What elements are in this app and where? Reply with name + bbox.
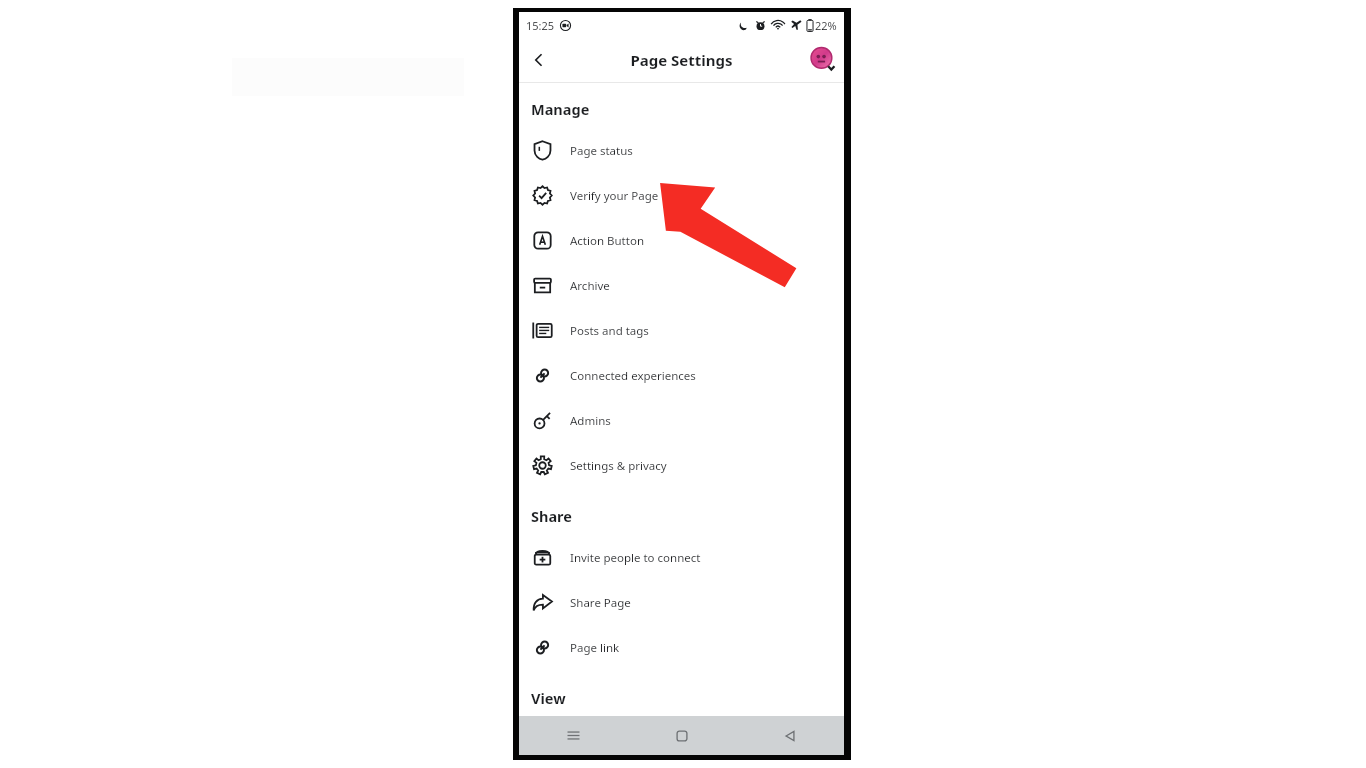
staticText: Page status — [570, 143, 633, 159]
button[interactable]: Admins — [519, 398, 844, 443]
staticText: 22% — [815, 18, 837, 33]
button[interactable]: Page status — [519, 128, 844, 173]
button[interactable]: Back — [736, 716, 844, 755]
staticText: Page link — [570, 640, 620, 656]
button[interactable]: Home — [628, 716, 736, 755]
button[interactable]: Profile switcher — [808, 45, 838, 75]
staticText: View — [531, 688, 566, 708]
button[interactable]: Settings & privacy — [519, 443, 844, 488]
button[interactable]: Action Button — [519, 218, 844, 263]
button[interactable]: Archive — [519, 263, 844, 308]
staticText: Posts and tags — [570, 323, 649, 339]
staticText: Settings & privacy — [570, 458, 667, 474]
button[interactable]: Recent apps — [519, 716, 628, 755]
staticText: Verify your Page — [570, 188, 659, 204]
button[interactable]: Posts and tags — [519, 308, 844, 353]
staticText: Action Button — [570, 233, 644, 249]
staticText: Connected experiences — [570, 368, 696, 384]
staticText: Invite people to connect — [570, 550, 701, 566]
staticText: 15:25 — [526, 18, 555, 33]
button[interactable]: Share Page — [519, 580, 844, 625]
other: Annotation arrow — [655, 178, 800, 290]
staticText: Admins — [570, 413, 611, 429]
button[interactable]: Invite people to connect — [519, 535, 844, 580]
button[interactable]: Connected experiences — [519, 353, 844, 398]
staticText: Archive — [570, 278, 610, 294]
staticText: Page Settings — [630, 50, 733, 70]
staticText: Share — [531, 506, 572, 526]
staticText: Manage — [531, 99, 590, 119]
button[interactable]: Page link — [519, 625, 844, 670]
button[interactable]: Back — [519, 40, 559, 80]
button[interactable]: Verify your Page — [519, 173, 844, 218]
staticText: Share Page — [570, 595, 631, 611]
